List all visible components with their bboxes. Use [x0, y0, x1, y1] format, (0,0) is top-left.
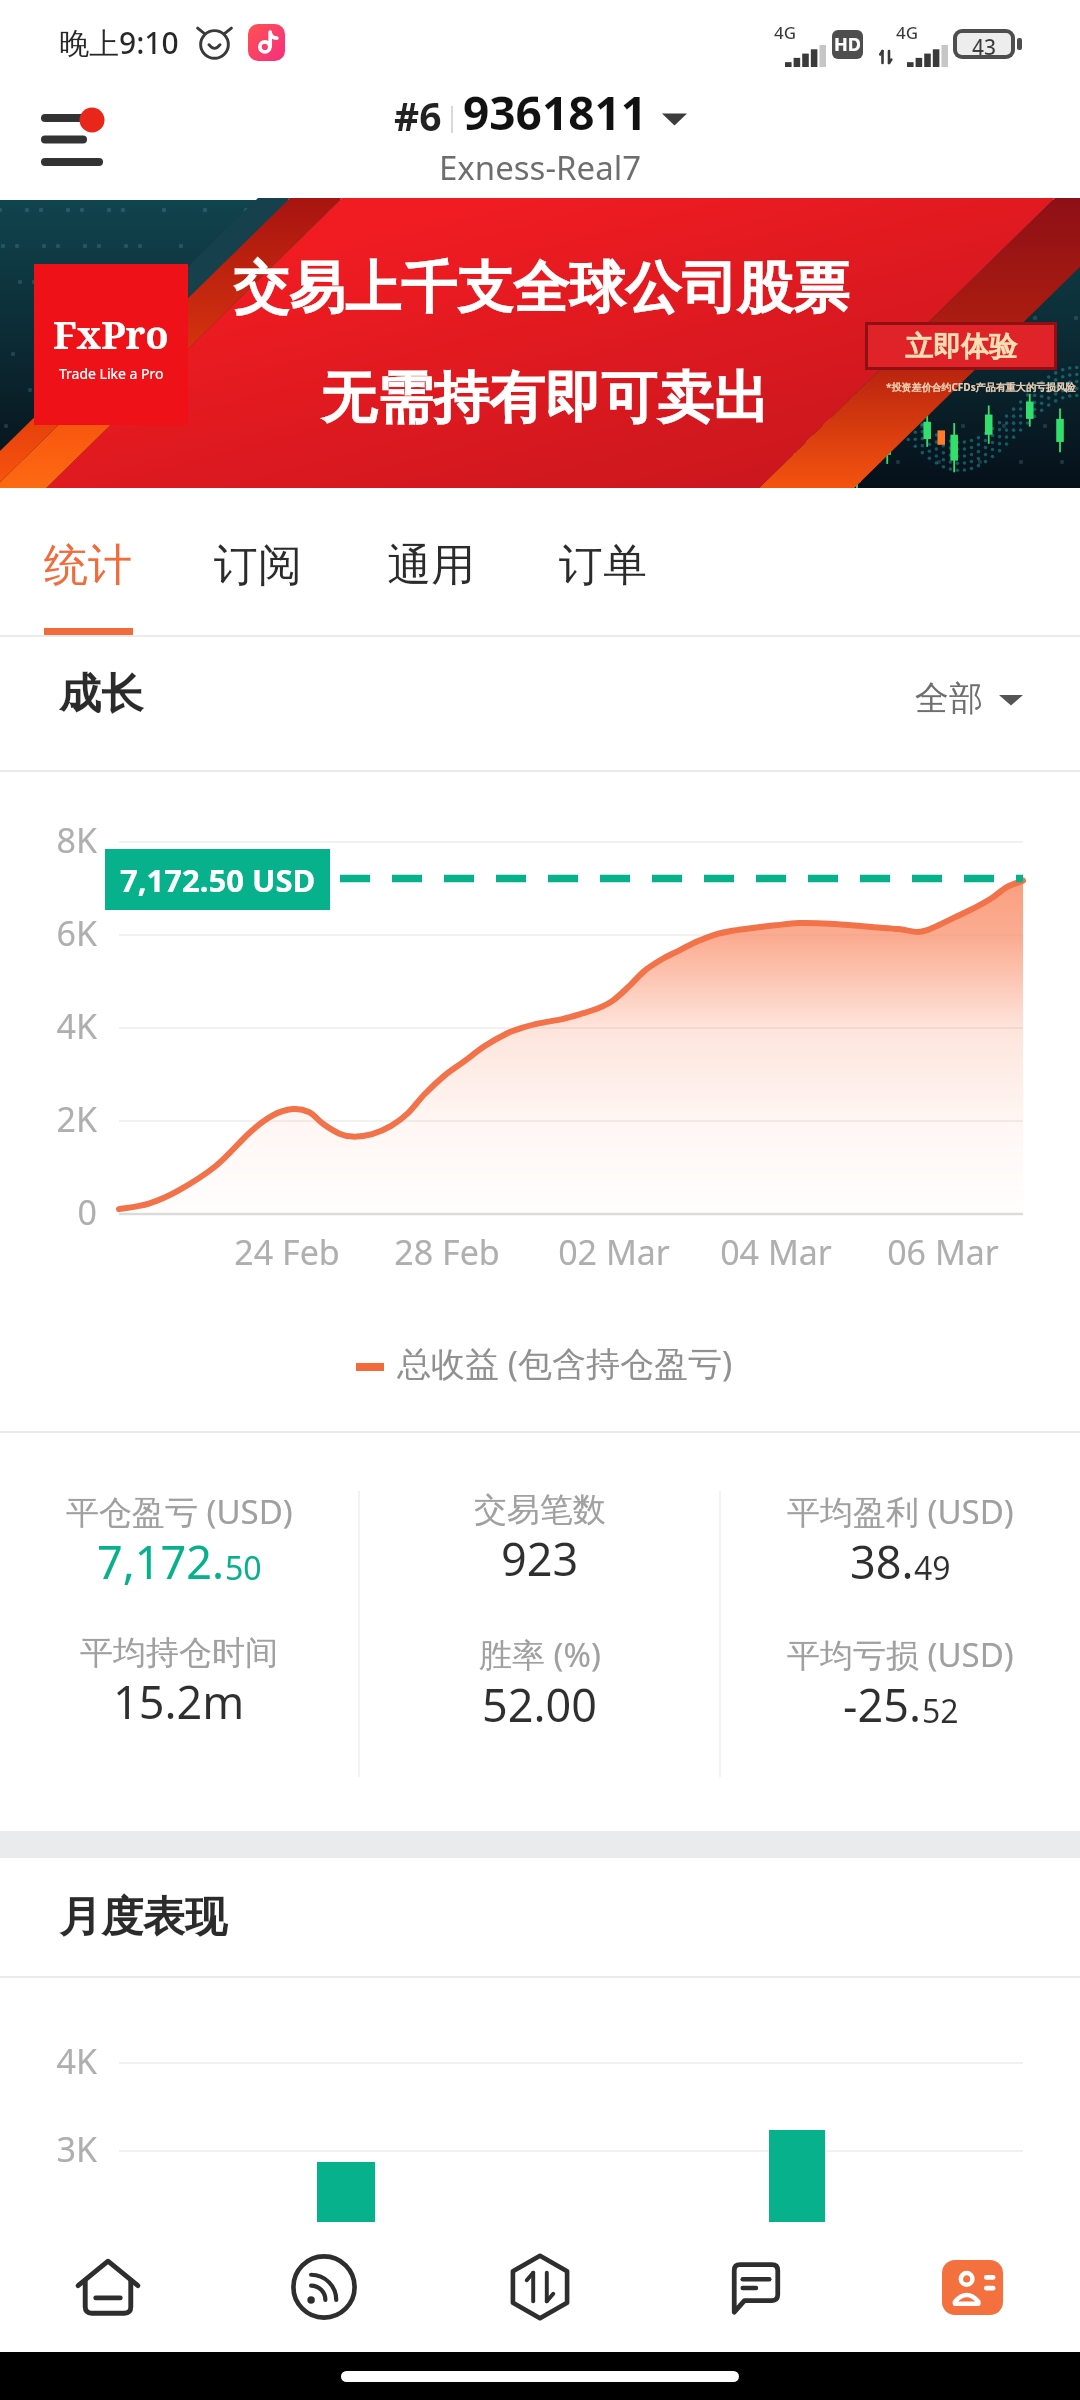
staticText: 28 Feb: [367, 1229, 527, 1275]
button[interactable]: 通用: [358, 488, 504, 635]
staticText: 平均亏损 (USD): [787, 1632, 1014, 1677]
staticText: 交易笔数: [474, 1489, 606, 1531]
button[interactable]: FxPro: [0, 200, 1080, 488]
staticText: Exness-Real7: [439, 145, 642, 190]
staticText: Trade Like a Pro: [59, 364, 164, 383]
button[interactable]: 订阅: [185, 488, 331, 635]
staticText: 52.00: [482, 1674, 598, 1735]
staticText: 7,172.50 USD: [120, 859, 316, 901]
staticText: 8K: [0, 817, 97, 863]
staticText: HD: [834, 32, 861, 57]
staticText: 0: [0, 1189, 97, 1235]
staticText: 6K: [0, 910, 97, 956]
staticText: 49: [914, 1546, 951, 1590]
button[interactable]: 月度表现: [0, 1858, 1080, 1976]
staticText: 50: [225, 1546, 262, 1590]
staticText: 统计: [44, 538, 132, 593]
staticText: *投资差价合约CFDs产品有重大的亏损风险: [886, 380, 1076, 394]
staticText: 7,172.: [97, 1531, 225, 1592]
staticText: 交易上千支全球公司股票: [233, 253, 849, 324]
button[interactable]: Messages: [648, 2222, 864, 2352]
staticText: 4G: [896, 21, 919, 44]
staticText: FxPro: [53, 308, 169, 360]
button[interactable]: 统计: [15, 488, 161, 635]
staticText: 4K: [0, 1003, 97, 1049]
staticText: 52: [922, 1689, 959, 1733]
staticText: 3K: [0, 2126, 97, 2172]
staticText: 43: [972, 33, 997, 55]
button[interactable]: 成长: [0, 637, 1080, 770]
staticText: -25.: [843, 1674, 922, 1735]
button[interactable]: Home: [0, 2222, 216, 2352]
staticText: 平均持仓时间: [80, 1632, 278, 1674]
staticText: 06 Mar: [863, 1229, 1023, 1275]
staticText: 无需持有即可卖出: [321, 363, 769, 434]
button[interactable]: Signals: [216, 2222, 432, 2352]
staticText: 订单: [559, 538, 647, 593]
staticText: 胜率 (%): [479, 1632, 601, 1677]
staticText: 02 Mar: [534, 1229, 694, 1275]
staticText: #6: [394, 89, 442, 142]
staticText: 平仓盈亏 (USD): [66, 1489, 293, 1534]
staticText: 15.2m: [113, 1671, 245, 1732]
staticText: 2K: [0, 1096, 97, 1142]
staticText: 24 Feb: [207, 1229, 367, 1275]
button[interactable]: Menu: [31, 97, 125, 191]
staticText: 晚上9:10: [59, 22, 179, 63]
staticText: 总收益 (包含持仓盈亏): [397, 1340, 733, 1386]
staticText: 4G: [774, 21, 797, 44]
staticText: 38.: [850, 1531, 914, 1592]
staticText: 9361811: [463, 81, 648, 144]
button[interactable]: 订单: [530, 488, 676, 635]
staticText: 04 Mar: [696, 1229, 856, 1275]
staticText: 923: [501, 1528, 579, 1589]
staticText: 全部: [915, 677, 983, 720]
button[interactable]: Trade: [432, 2222, 648, 2352]
staticText: 成长: [59, 668, 143, 721]
staticText: 月度表现: [59, 1891, 227, 1944]
staticText: 立即体验: [905, 329, 1017, 364]
staticText: 4K: [0, 2038, 97, 2084]
staticText: 订阅: [214, 538, 302, 593]
staticText: 平均盈利 (USD): [787, 1489, 1014, 1534]
button[interactable]: Accounts: [864, 2222, 1080, 2352]
staticText: 通用: [387, 538, 475, 593]
